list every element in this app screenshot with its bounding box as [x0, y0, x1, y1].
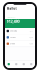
staticText: Wallet: [7, 7, 17, 10]
staticText: $12,480: [7, 18, 20, 24]
button[interactable]: Pay: [20, 60, 27, 68]
staticText: Total balance: [7, 17, 16, 18]
staticText: 4,210: [29, 30, 33, 32]
button[interactable]: Checking: [5, 28, 35, 34]
staticText: Checking: [10, 30, 17, 32]
staticText: 6,940: [29, 36, 33, 38]
button[interactable]: Credit: [5, 41, 35, 47]
button[interactable]: Savings: [5, 34, 35, 40]
staticText: Savings: [10, 36, 16, 38]
button[interactable]: Cards: [12, 60, 20, 68]
staticText: Credit: [10, 43, 14, 45]
staticText: 1,330: [29, 43, 33, 45]
button[interactable]: Home: [5, 60, 12, 68]
button[interactable]: More: [27, 60, 35, 68]
